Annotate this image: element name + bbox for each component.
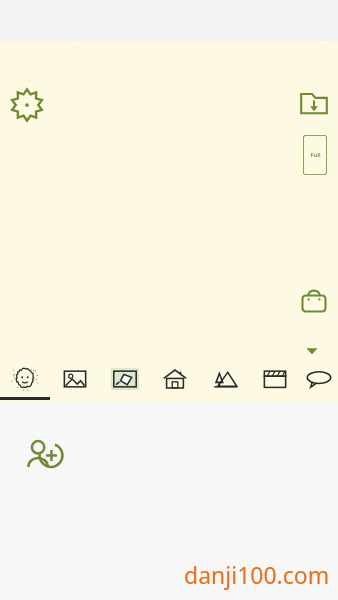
staticText: danji100.com bbox=[184, 559, 330, 590]
button[interactable]: Import bbox=[298, 87, 330, 119]
button[interactable]: Collapse bbox=[304, 343, 320, 359]
button[interactable]: Settings bbox=[10, 88, 44, 122]
button[interactable] bbox=[200, 355, 250, 402]
button[interactable] bbox=[250, 355, 300, 402]
button[interactable]: Add person bbox=[22, 432, 68, 478]
button[interactable]: Store bbox=[298, 285, 330, 317]
button[interactable] bbox=[50, 355, 100, 402]
button[interactable]: Full bbox=[303, 135, 327, 175]
button[interactable] bbox=[300, 355, 338, 402]
button[interactable] bbox=[0, 355, 50, 402]
button[interactable] bbox=[100, 355, 150, 402]
button[interactable] bbox=[150, 355, 200, 402]
staticText: Full bbox=[310, 151, 321, 159]
